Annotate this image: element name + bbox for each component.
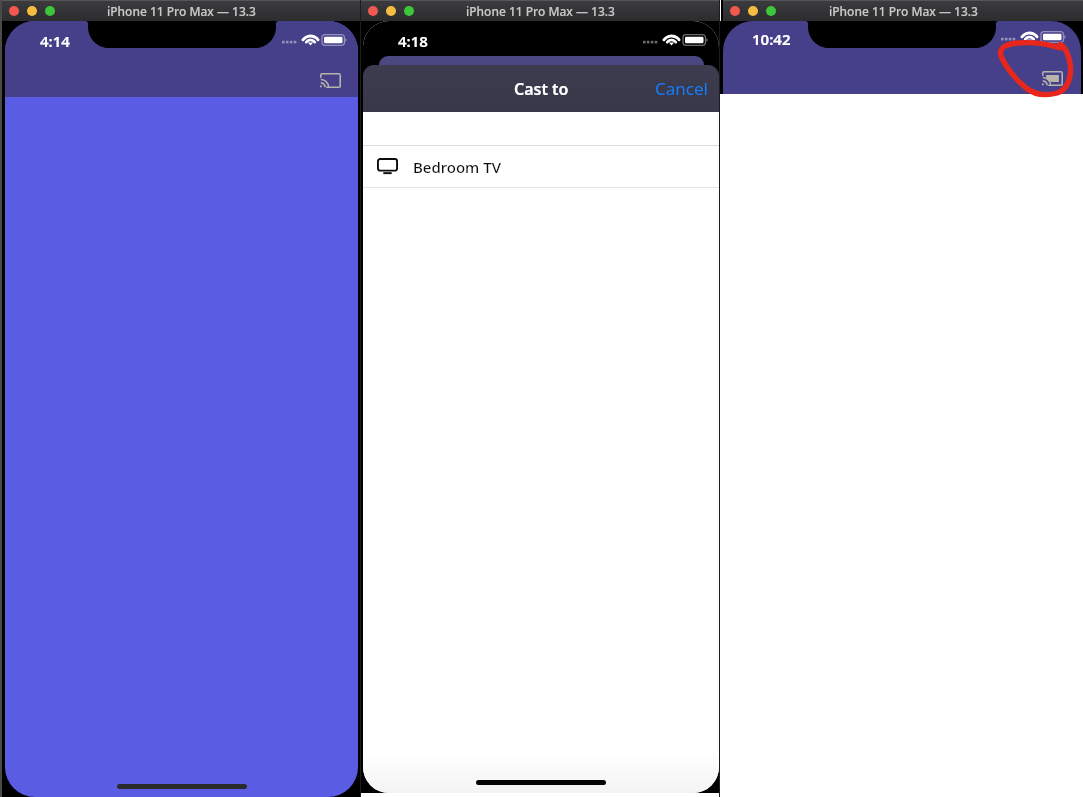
staticText: Cancel [655,77,708,100]
button[interactable]: Cast to [363,65,719,112]
staticText: Bedroom TV [413,157,501,177]
staticText: Cast to [514,78,569,100]
staticText: iPhone 11 Pro Max — 13.3 [107,3,256,19]
staticText: iPhone 11 Pro Max — 13.3 [829,3,978,19]
staticText: iPhone 11 Pro Max — 13.3 [466,3,615,19]
button[interactable]: Cast connected [1036,62,1068,94]
button[interactable]: Cast [313,63,347,97]
button[interactable]: Cancel [647,71,716,106]
staticText: 4:14 [40,31,70,51]
staticText: 10:42 [752,29,791,49]
staticText: 4:18 [398,31,428,51]
button[interactable]: Bedroom TV [363,146,719,187]
